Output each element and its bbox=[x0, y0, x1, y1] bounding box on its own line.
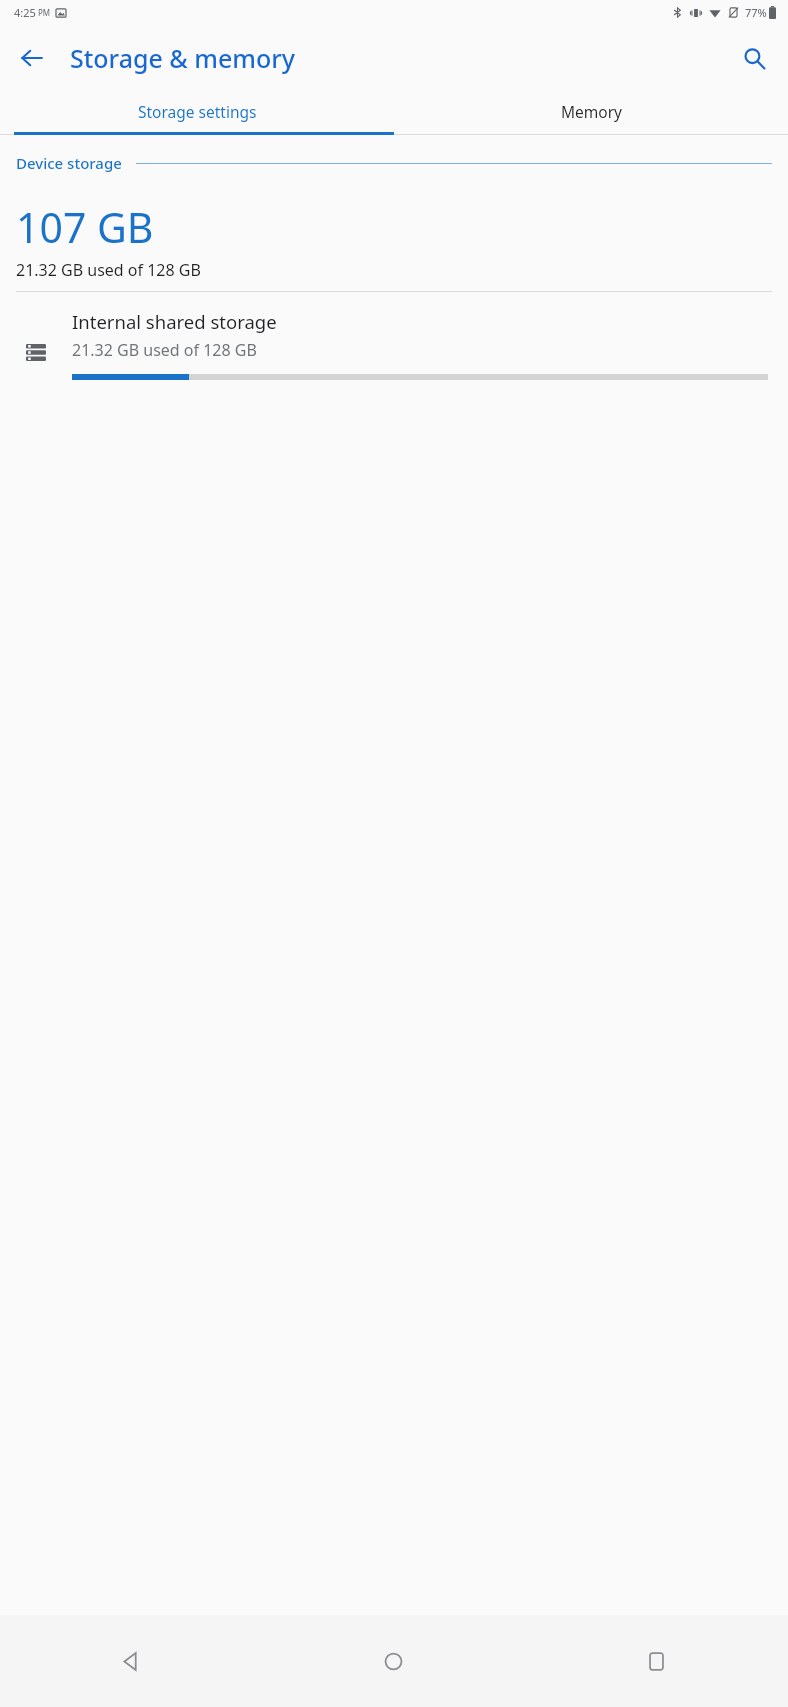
button[interactable]: Recent apps bbox=[525, 1615, 788, 1707]
staticText: Internal shared storage bbox=[72, 309, 277, 334]
staticText: Storage & memory bbox=[70, 41, 296, 75]
button[interactable]: Back bbox=[0, 1615, 262, 1707]
staticText: 107 GB bbox=[16, 199, 154, 255]
button[interactable]: Storage settings bbox=[0, 90, 394, 132]
staticText: 4:25 bbox=[14, 5, 36, 20]
staticText: PM bbox=[38, 7, 51, 18]
staticText: 77% bbox=[745, 5, 767, 20]
button[interactable]: Memory bbox=[394, 90, 788, 132]
button[interactable]: Home bbox=[262, 1615, 525, 1707]
staticText: 21.32 GB used of 128 GB bbox=[72, 339, 257, 361]
button[interactable]: Search bbox=[730, 34, 778, 82]
staticText: Memory bbox=[561, 101, 622, 122]
staticText: 21.32 GB used of 128 GB bbox=[16, 259, 201, 281]
button[interactable]: Back bbox=[8, 34, 56, 82]
staticText: Device storage bbox=[16, 153, 122, 173]
staticText: Storage settings bbox=[138, 101, 257, 122]
button[interactable]: Internal shared storage bbox=[0, 292, 788, 397]
